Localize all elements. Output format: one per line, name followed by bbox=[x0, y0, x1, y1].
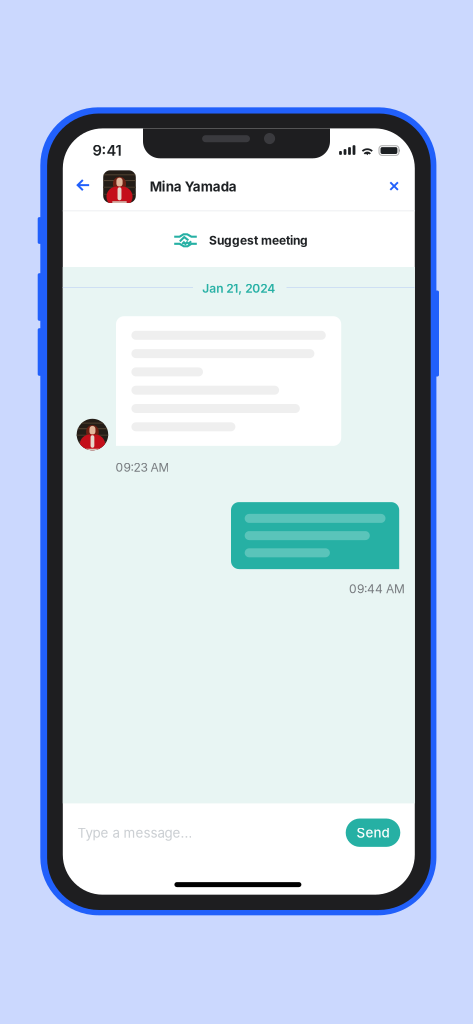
staticText: Jan 21, 2024 bbox=[202, 281, 275, 295]
button[interactable]: Back bbox=[66, 168, 100, 202]
button[interactable]: Send bbox=[346, 818, 400, 847]
staticText: 9:41 bbox=[93, 142, 122, 159]
staticText: 09:44 AM bbox=[349, 582, 405, 596]
staticText: Suggest meeting bbox=[209, 233, 308, 248]
staticText: 09:23 AM bbox=[115, 460, 169, 474]
staticText: Type a message... bbox=[77, 825, 192, 841]
staticText: Mina Yamada bbox=[150, 179, 237, 194]
staticText: Send bbox=[356, 825, 389, 840]
button[interactable]: Suggest meeting bbox=[63, 211, 415, 268]
button[interactable]: Close bbox=[377, 169, 411, 203]
